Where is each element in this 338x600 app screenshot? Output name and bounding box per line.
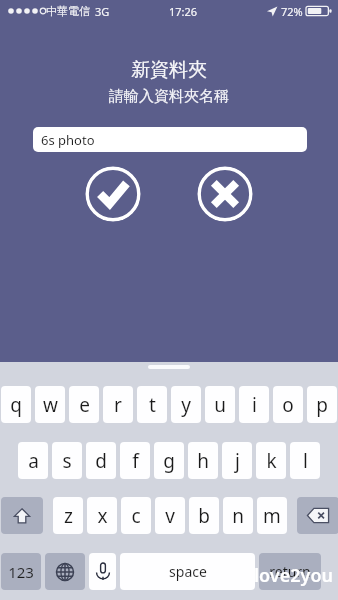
staticText: u [214, 392, 226, 418]
staticText: 123 [8, 562, 34, 582]
button[interactable]: g [154, 442, 184, 479]
button[interactable]: v [155, 497, 185, 534]
button[interactable]: r [103, 386, 133, 423]
staticText: h [197, 448, 209, 474]
button[interactable]: c [121, 497, 151, 534]
staticText: b [198, 503, 210, 529]
button[interactable]: k [256, 442, 286, 479]
staticText: o [282, 392, 294, 418]
staticText: n [232, 503, 244, 529]
staticText: 中華電信 [46, 4, 90, 18]
button[interactable]: Confirm [85, 166, 141, 222]
button[interactable]: j [222, 442, 252, 479]
staticText: 3G [95, 4, 110, 19]
button[interactable]: return [259, 553, 321, 590]
button[interactable]: i [239, 386, 269, 423]
staticText: s [62, 448, 72, 474]
button[interactable]: h [188, 442, 218, 479]
staticText: 72% [281, 4, 303, 19]
staticText: p [316, 392, 328, 418]
staticText: j [235, 448, 240, 474]
button[interactable]: w [35, 386, 65, 423]
button[interactable]: p [307, 386, 337, 423]
button[interactable]: f [120, 442, 150, 479]
button[interactable]: l [290, 442, 320, 479]
button[interactable]: u [205, 386, 235, 423]
staticText: c [131, 503, 141, 529]
staticText: r [114, 392, 122, 418]
staticText: love2you [254, 563, 333, 588]
staticText: 6s photo [41, 131, 95, 149]
button[interactable]: 6s photo [33, 127, 307, 152]
staticText: e [79, 392, 90, 418]
staticText: l [303, 448, 308, 474]
button[interactable]: s [52, 442, 82, 479]
staticText: space [169, 562, 207, 581]
button[interactable]: y [171, 386, 201, 423]
button[interactable]: b [189, 497, 219, 534]
staticText: q [10, 392, 22, 418]
button[interactable]: o [273, 386, 303, 423]
button[interactable]: d [86, 442, 116, 479]
button[interactable]: Dictate [89, 553, 116, 590]
staticText: m [263, 503, 281, 529]
staticText: k [266, 448, 277, 474]
button[interactable]: x [87, 497, 117, 534]
staticText: t [149, 392, 156, 418]
staticText: d [95, 448, 107, 474]
staticText: return [269, 562, 311, 581]
staticText: 17:26 [169, 4, 198, 19]
staticText: 新資料夾 [131, 58, 207, 82]
staticText: f [132, 448, 139, 474]
staticText: g [163, 448, 175, 474]
button[interactable]: t [137, 386, 167, 423]
button[interactable]: e [69, 386, 99, 423]
button[interactable]: q [1, 386, 31, 423]
staticText: x [97, 503, 108, 529]
button[interactable]: m [257, 497, 287, 534]
staticText: 請輸入資料夾名稱 [109, 87, 229, 106]
button[interactable]: Cancel [197, 166, 253, 222]
staticText: i [252, 392, 257, 418]
button[interactable]: a [18, 442, 48, 479]
staticText: y [181, 392, 191, 418]
staticText: a [28, 448, 39, 474]
staticText: z [64, 503, 73, 529]
button[interactable]: Change keyboard [45, 553, 85, 590]
button[interactable]: Backspace [297, 497, 338, 534]
button[interactable]: 123 [1, 553, 41, 590]
button[interactable]: n [223, 497, 253, 534]
staticText: w [43, 392, 58, 418]
button[interactable]: space [120, 553, 255, 590]
staticText: v [165, 503, 175, 529]
button[interactable]: Shift [1, 497, 43, 534]
button[interactable]: z [53, 497, 83, 534]
